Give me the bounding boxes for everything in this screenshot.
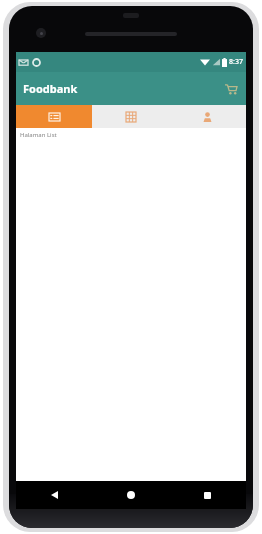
button[interactable]: Back (16, 481, 92, 509)
button[interactable]: Home (92, 481, 169, 509)
button[interactable]: Shopping cart (220, 78, 242, 100)
button[interactable]: Grid tab (92, 105, 169, 128)
staticText: Halaman List (20, 131, 57, 139)
staticText: 8:37 (229, 57, 243, 67)
staticText: Foodbank (23, 81, 78, 96)
button[interactable]: List tab (16, 105, 92, 128)
button[interactable]: Account tab (169, 105, 246, 128)
button[interactable]: Recent apps (169, 481, 246, 509)
